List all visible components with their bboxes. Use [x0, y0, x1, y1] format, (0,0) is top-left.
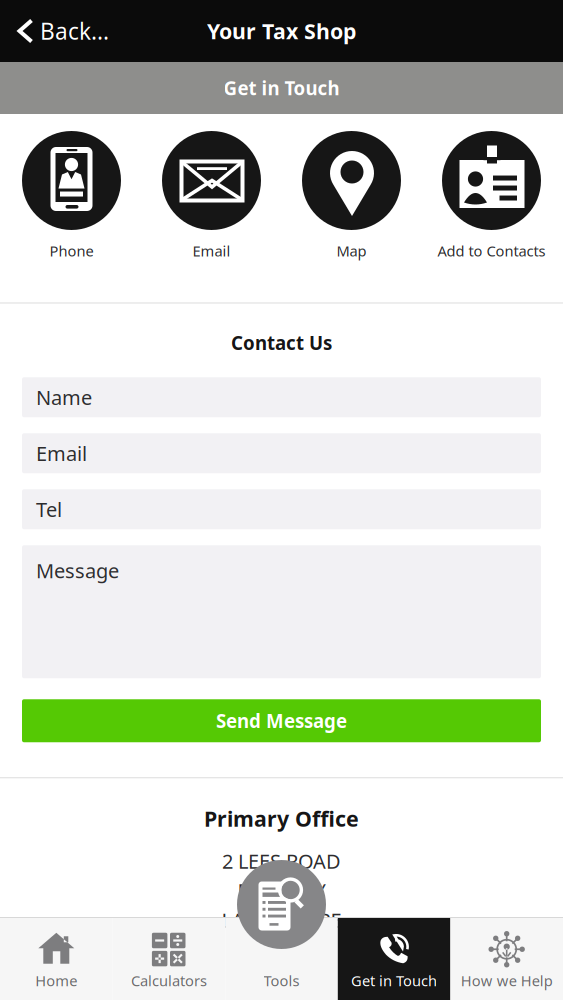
staticText: LANCASHIRE: [221, 907, 341, 933]
staticText: Primary Office: [204, 804, 359, 833]
button[interactable]: Back...: [0, 6, 125, 56]
button[interactable]: Home: [0, 918, 113, 1000]
staticText: Send Message: [216, 708, 347, 733]
staticText: Add to Contacts: [437, 241, 545, 260]
staticText: Contact Us: [231, 330, 332, 355]
staticText: Phone: [49, 241, 93, 260]
staticText: How we Help: [461, 971, 553, 990]
button[interactable]: Get in Touch: [338, 918, 450, 1000]
staticText: Tel: [36, 496, 62, 523]
staticText: Email: [36, 440, 87, 467]
button[interactable]: How we Help: [450, 918, 563, 1000]
staticText: Your Tax Shop: [207, 17, 356, 45]
staticText: Message: [36, 557, 119, 584]
button[interactable]: Map: [281, 131, 421, 260]
button[interactable]: Send Message: [22, 699, 541, 742]
button[interactable]: Tools: [225, 918, 338, 1000]
staticText: MOSSLEY: [237, 877, 325, 904]
staticText: Tools: [263, 971, 299, 990]
button[interactable]: Tools: [237, 860, 326, 949]
staticText: Name: [36, 384, 92, 411]
staticText: Email: [192, 241, 230, 260]
staticText: Home: [35, 971, 77, 990]
staticText: Calculators: [131, 971, 207, 990]
staticText: Get in Touch: [223, 76, 339, 100]
staticText: Get in Touch: [351, 971, 437, 990]
button[interactable]: Add to Contacts: [421, 131, 561, 260]
button[interactable]: Email: [141, 131, 281, 260]
button[interactable]: Phone: [1, 131, 141, 260]
staticText: 2 LEES ROAD: [222, 848, 341, 874]
button[interactable]: Calculators: [113, 918, 225, 1000]
staticText: Back...: [40, 16, 109, 46]
staticText: Map: [336, 241, 366, 260]
